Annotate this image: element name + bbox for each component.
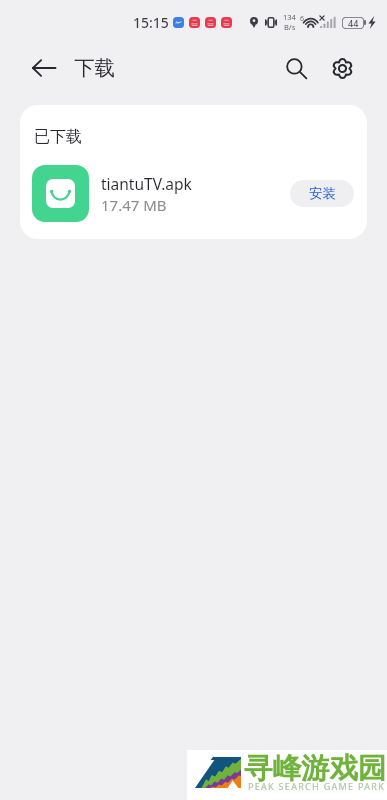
staticText: 寻峰游戏园	[244, 751, 387, 787]
button[interactable]: Search	[277, 49, 315, 87]
staticText: 6	[300, 14, 305, 24]
staticText: PEAK SEARCH GAME PARK	[248, 780, 386, 792]
staticText: 安装	[309, 185, 336, 202]
staticText: 44	[348, 17, 359, 29]
staticText: 已下载	[34, 127, 82, 147]
button[interactable]: 安装	[290, 180, 354, 207]
staticText: 134	[283, 12, 296, 22]
staticText: 17.47 MB	[101, 195, 167, 215]
staticText: 下载	[74, 55, 115, 81]
button[interactable]: Back	[24, 48, 64, 88]
staticText: tiantuTV.apk	[101, 173, 192, 194]
button[interactable]: Settings	[323, 49, 361, 87]
staticText: 15:15	[133, 13, 169, 32]
staticText: B/s	[284, 22, 296, 32]
